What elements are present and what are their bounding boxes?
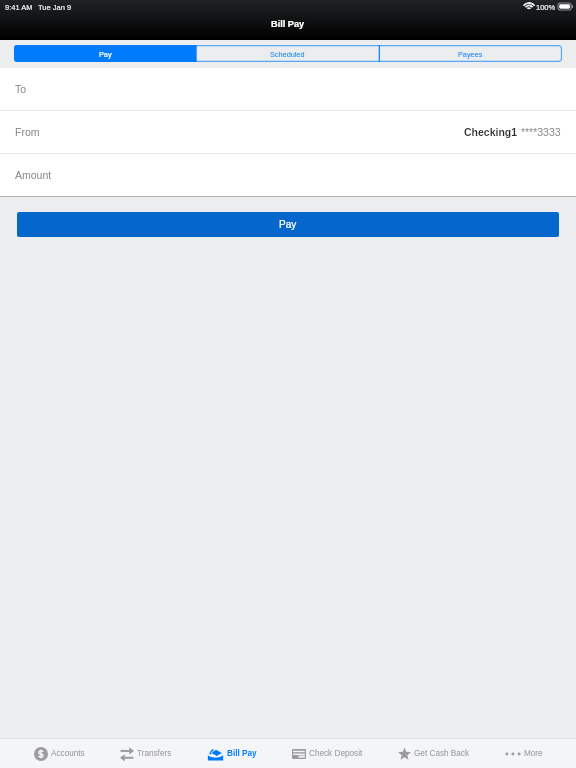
button[interactable]: More: [505, 739, 543, 768]
button[interactable]: Payees: [379, 45, 562, 62]
button[interactable]: From: [0, 111, 576, 153]
staticText: Tue Jan 9: [38, 3, 72, 11]
staticText: Pay: [279, 219, 297, 230]
button[interactable]: Check Deposit: [292, 739, 363, 768]
staticText: Payees: [458, 50, 483, 58]
staticText: Amount: [15, 169, 52, 181]
button[interactable]: Amount: [0, 154, 576, 196]
staticText: Bill Pay: [227, 749, 257, 758]
button[interactable]: Bill Pay: [207, 739, 257, 768]
staticText: Check Deposit: [309, 749, 363, 758]
staticText: More: [524, 749, 543, 758]
staticText: To: [15, 83, 27, 95]
staticText: Transfers: [137, 749, 172, 758]
staticText: Checking1: [464, 126, 518, 138]
staticText: ****3333: [518, 126, 561, 138]
button[interactable]: Scheduled: [196, 45, 379, 62]
button[interactable]: To: [0, 68, 576, 110]
staticText: Pay: [99, 50, 112, 58]
button[interactable]: Accounts: [34, 739, 85, 768]
button[interactable]: Pay: [14, 45, 196, 62]
staticText: Get Cash Back: [414, 749, 470, 758]
button[interactable]: Transfers: [120, 739, 172, 768]
button[interactable]: Pay: [17, 212, 559, 237]
staticText: 100%: [536, 3, 556, 11]
button[interactable]: Get Cash Back: [398, 739, 470, 768]
staticText: Bill Pay: [271, 19, 305, 29]
staticText: Accounts: [51, 749, 85, 758]
staticText: Scheduled: [270, 50, 305, 58]
staticText: From: [15, 126, 40, 138]
staticText: 9:41 AM: [5, 3, 33, 11]
